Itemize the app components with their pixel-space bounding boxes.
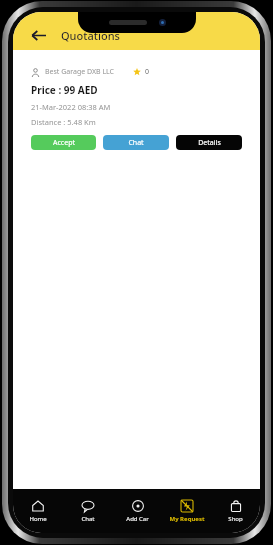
- staticText: Add Car: [126, 515, 149, 523]
- staticText: Home: [29, 515, 47, 523]
- staticText: Distance : 5.48 Km: [31, 117, 96, 127]
- staticText: My Request: [169, 515, 205, 523]
- staticText: Chat: [128, 138, 144, 148]
- staticText: Chat: [81, 515, 95, 523]
- button[interactable]: Best Garage DXB LLC: [31, 67, 242, 150]
- button[interactable]: Chat: [103, 135, 169, 150]
- staticText: 0: [145, 67, 150, 77]
- staticText: Best Garage DXB LLC: [45, 67, 115, 77]
- staticText: 21-Mar-2022 08:38 AM: [31, 102, 111, 112]
- button[interactable]: Add Car: [113, 489, 162, 533]
- staticText: Accept: [53, 138, 75, 148]
- staticText: Shop: [228, 515, 243, 523]
- button[interactable]: Back: [23, 20, 53, 50]
- button[interactable]: Home: [13, 489, 63, 533]
- staticText: Quotations: [61, 28, 120, 43]
- staticText: Details: [198, 138, 221, 148]
- button[interactable]: My Request: [162, 489, 211, 533]
- staticText: Price : 99 AED: [31, 83, 98, 97]
- button[interactable]: Chat: [63, 489, 113, 533]
- button[interactable]: Accept: [31, 135, 96, 150]
- button[interactable]: Shop: [211, 489, 260, 533]
- button[interactable]: Details: [176, 135, 242, 150]
